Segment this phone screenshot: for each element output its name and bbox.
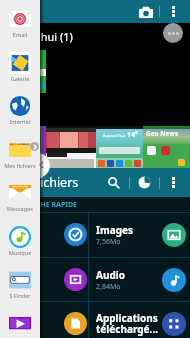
staticText: 7,56Mo (96, 237, 121, 247)
button[interactable]: Messages (0, 178, 40, 222)
button[interactable]: Camera (136, 0, 155, 23)
button[interactable]: Galerie (0, 48, 40, 92)
staticText: S Finder (0, 292, 44, 300)
button[interactable]: Applications téléchargé... (89, 301, 190, 338)
staticText: Aujourd'hui (103, 133, 125, 138)
staticText: Email (0, 31, 44, 39)
staticText: Audio (96, 268, 125, 282)
button[interactable]: Menu (163, 23, 183, 43)
button[interactable] (0, 301, 88, 338)
button[interactable]: Open in multi window (30, 142, 39, 151)
button[interactable]: More options (164, 0, 182, 23)
button[interactable]: Internet (0, 91, 40, 135)
staticText: Aujourd'hui (1) (0, 29, 73, 44)
staticText: 14° (127, 130, 138, 140)
staticText: Internet (0, 118, 44, 126)
button[interactable] (0, 257, 88, 302)
staticText: Galerie (0, 75, 44, 83)
button[interactable]: Musique (0, 222, 40, 266)
button[interactable]: S Finder (0, 265, 40, 309)
button[interactable]: Images (89, 212, 190, 257)
staticText: Geo News (146, 129, 179, 138)
staticText: Images (96, 223, 133, 237)
button[interactable]: Geo News (143, 126, 190, 168)
button[interactable]: Recent files (134, 168, 154, 197)
button[interactable]: Audio (89, 257, 190, 302)
staticText: RECHERCHE RAPIDE (9, 200, 78, 210)
button[interactable] (46, 126, 96, 168)
button[interactable]: Email (0, 4, 40, 48)
staticText: Mes fichiers (0, 162, 44, 170)
button[interactable]: 14° (96, 126, 143, 168)
staticText: Mes fichiers (8, 174, 79, 191)
button[interactable]: More options (165, 168, 182, 197)
button[interactable] (0, 212, 88, 257)
staticText: Applications téléchargé... (96, 311, 158, 336)
button[interactable]: Collapse panel (25, 153, 50, 178)
button[interactable] (0, 309, 40, 338)
button[interactable]: Search (104, 168, 124, 197)
staticText: Messages (0, 205, 44, 213)
button[interactable]: Mes fichiers (0, 135, 40, 179)
staticText: Musique (0, 249, 44, 257)
staticText: 2,84Mo (96, 282, 121, 292)
